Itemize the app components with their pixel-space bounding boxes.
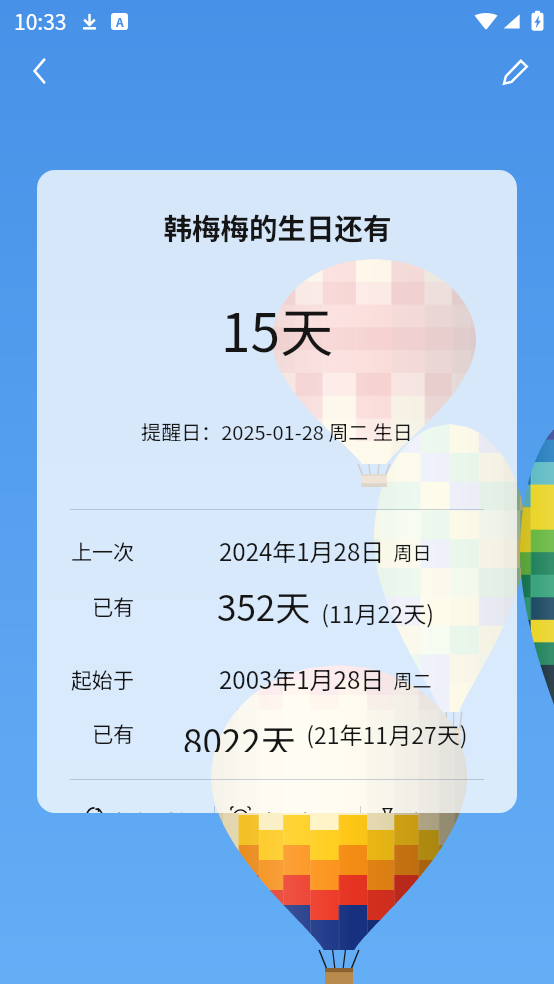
staticText: 8022天: [183, 714, 296, 752]
staticText: (21年11月27天): [296, 717, 468, 750]
staticText: 起始于: [71, 664, 134, 694]
staticText: 未置顶: [406, 806, 469, 813]
staticText: A: [116, 13, 124, 30]
staticText: 每年重复: [113, 806, 197, 813]
staticText: 2003年1月28日: [219, 661, 385, 696]
staticText: 已有: [92, 591, 134, 621]
button[interactable]: 多项提醒: [231, 806, 343, 813]
staticText: 上一次: [71, 536, 134, 566]
button[interactable]: Edit: [492, 47, 540, 95]
staticText: 15天: [221, 291, 333, 368]
staticText: 2024年1月28日: [219, 533, 385, 568]
staticText: 周二: [385, 666, 432, 694]
staticText: (11月22天): [311, 596, 434, 629]
staticText: 提醒日：2025-01-28 周二 生日: [141, 417, 413, 446]
button[interactable]: 每年重复: [85, 806, 197, 813]
staticText: 周日: [385, 538, 432, 566]
staticText: 多项提醒: [259, 806, 343, 813]
staticText: 352天: [217, 580, 311, 631]
button[interactable]: Back: [16, 47, 64, 95]
button[interactable]: 未置顶: [378, 806, 469, 813]
staticText: 已有: [92, 718, 134, 748]
staticText: 10:33: [14, 6, 67, 36]
staticText: 韩梅梅的生日还有: [163, 206, 392, 247]
